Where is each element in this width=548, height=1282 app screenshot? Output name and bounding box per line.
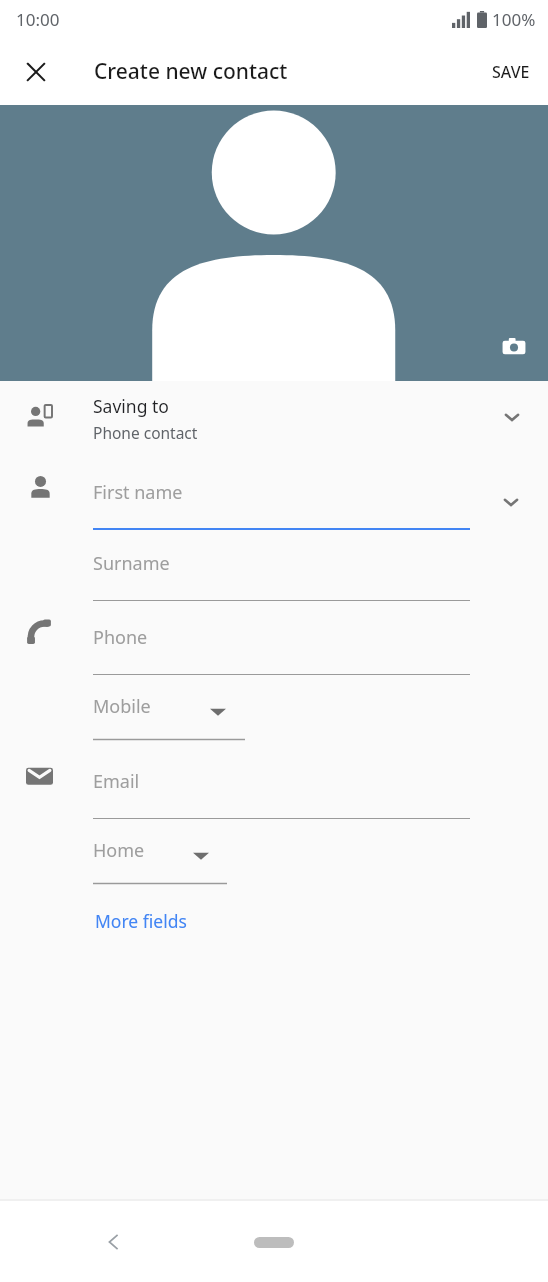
- button[interactable]: First name: [93, 468, 470, 530]
- button[interactable]: Home: [242, 1223, 306, 1261]
- staticText: Phone contact: [93, 422, 198, 443]
- button[interactable]: Add contact photo: [0, 105, 548, 381]
- button[interactable]: Surname: [93, 539, 470, 601]
- staticText: Surname: [93, 551, 170, 576]
- button[interactable]: Saving to: [0, 381, 548, 465]
- button[interactable]: Back: [90, 1218, 138, 1266]
- button[interactable]: More fields: [93, 903, 189, 939]
- staticText: Mobile: [93, 694, 151, 719]
- button[interactable]: Choose account: [490, 395, 534, 439]
- staticText: Home: [93, 838, 145, 863]
- staticText: Saving to: [93, 394, 169, 418]
- button[interactable]: Email: [93, 757, 470, 819]
- button[interactable]: Phone: [93, 613, 470, 675]
- staticText: First name: [93, 480, 183, 505]
- staticText: SAVE: [492, 61, 530, 83]
- button[interactable]: SAVE: [474, 47, 548, 97]
- staticText: Email: [93, 769, 140, 794]
- button[interactable]: Close: [12, 48, 60, 96]
- button[interactable]: Change photo: [492, 325, 536, 369]
- staticText: Phone: [93, 625, 148, 650]
- button[interactable]: Home: [93, 828, 227, 884]
- button[interactable]: Mobile: [93, 684, 245, 740]
- staticText: Create new contact: [94, 57, 288, 86]
- button[interactable]: Expand name fields: [489, 480, 533, 524]
- staticText: 100%: [492, 8, 536, 31]
- staticText: 10:00: [16, 8, 60, 31]
- staticText: More fields: [95, 909, 187, 933]
